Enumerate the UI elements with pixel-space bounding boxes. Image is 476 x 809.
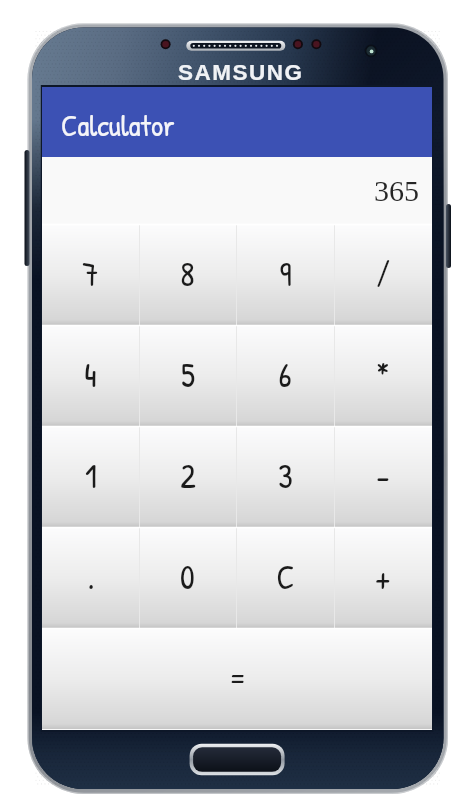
staticText: -: [376, 454, 390, 499]
button[interactable]: .: [42, 527, 139, 628]
staticText: .: [87, 555, 95, 600]
button[interactable]: 6: [236, 325, 334, 426]
staticText: *: [376, 353, 390, 398]
staticText: C: [276, 555, 295, 600]
staticText: 0: [180, 555, 195, 600]
button[interactable]: *: [334, 325, 432, 426]
button[interactable]: 9: [236, 224, 334, 325]
staticText: 8: [180, 252, 195, 297]
staticText: 6: [278, 353, 292, 398]
staticText: 4: [84, 353, 97, 398]
button[interactable]: -: [334, 426, 432, 527]
staticText: 5: [181, 353, 195, 398]
button[interactable]: 3: [236, 426, 334, 527]
button[interactable]: 2: [139, 426, 236, 527]
button[interactable]: 1: [42, 426, 139, 527]
staticText: 365: [374, 174, 419, 207]
button[interactable]: /: [334, 224, 432, 325]
staticText: 2: [180, 454, 196, 499]
staticText: =: [228, 656, 247, 701]
staticText: 3: [278, 454, 293, 499]
button[interactable]: C: [236, 527, 334, 628]
button[interactable]: 4: [42, 325, 139, 426]
staticText: +: [375, 555, 391, 600]
button[interactable]: 5: [139, 325, 236, 426]
button[interactable]: =: [42, 628, 432, 729]
button[interactable]: Calculator: [42, 87, 432, 157]
button[interactable]: +: [334, 527, 432, 628]
staticText: 9: [279, 252, 292, 297]
button[interactable]: 7: [42, 224, 139, 325]
staticText: SAMSUNG: [178, 60, 304, 85]
staticText: Calculator: [61, 105, 175, 146]
button[interactable]: 8: [139, 224, 236, 325]
staticText: 7: [82, 252, 99, 297]
button[interactable]: 0: [139, 527, 236, 628]
staticText: /: [376, 252, 390, 297]
staticText: 1: [85, 454, 97, 499]
